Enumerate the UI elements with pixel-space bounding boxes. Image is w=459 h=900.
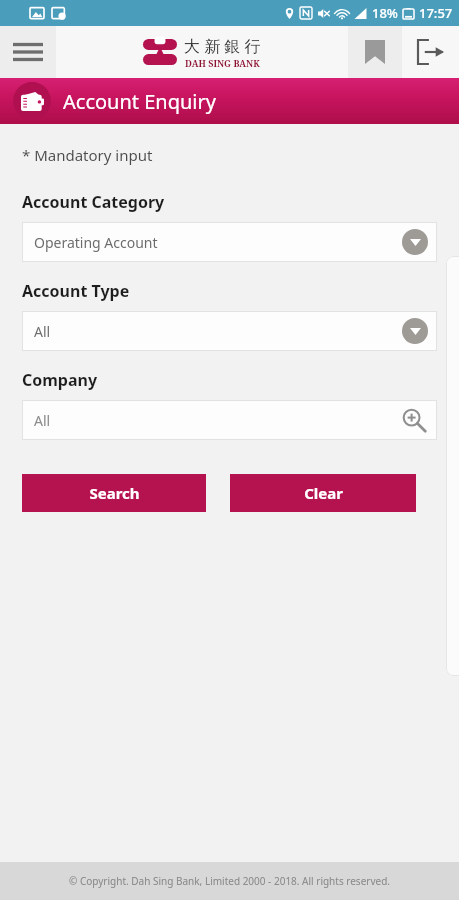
- button[interactable]: All: [22, 311, 437, 351]
- staticText: All: [34, 322, 51, 341]
- staticText: Operating Account: [34, 233, 158, 252]
- staticText: DAH SING BANK: [185, 57, 260, 69]
- staticText: Search: [89, 483, 140, 503]
- button[interactable]: Search: [22, 474, 206, 512]
- other: Search company: [401, 407, 427, 433]
- staticText: 18%: [372, 4, 398, 22]
- button[interactable]: Menu: [0, 26, 56, 78]
- button[interactable]: Operating Account: [22, 222, 437, 262]
- staticText: Account Enquiry: [63, 88, 216, 115]
- staticText: Clear: [304, 483, 343, 503]
- staticText: 17:57: [419, 4, 453, 22]
- button[interactable]: All: [22, 400, 437, 440]
- staticText: Account Category: [22, 191, 165, 213]
- staticText: Account Type: [22, 280, 130, 302]
- staticText: * Mandatory input: [22, 145, 153, 165]
- staticText: © Copyright. Dah Sing Bank, Limited 2000…: [69, 874, 390, 888]
- button[interactable]: Log out: [402, 26, 459, 78]
- staticText: 大 新 銀 行: [184, 35, 261, 57]
- button[interactable]: Bookmark: [348, 26, 402, 78]
- staticText: Company: [22, 369, 98, 391]
- staticText: All: [34, 411, 51, 430]
- button[interactable]: Clear: [230, 474, 416, 512]
